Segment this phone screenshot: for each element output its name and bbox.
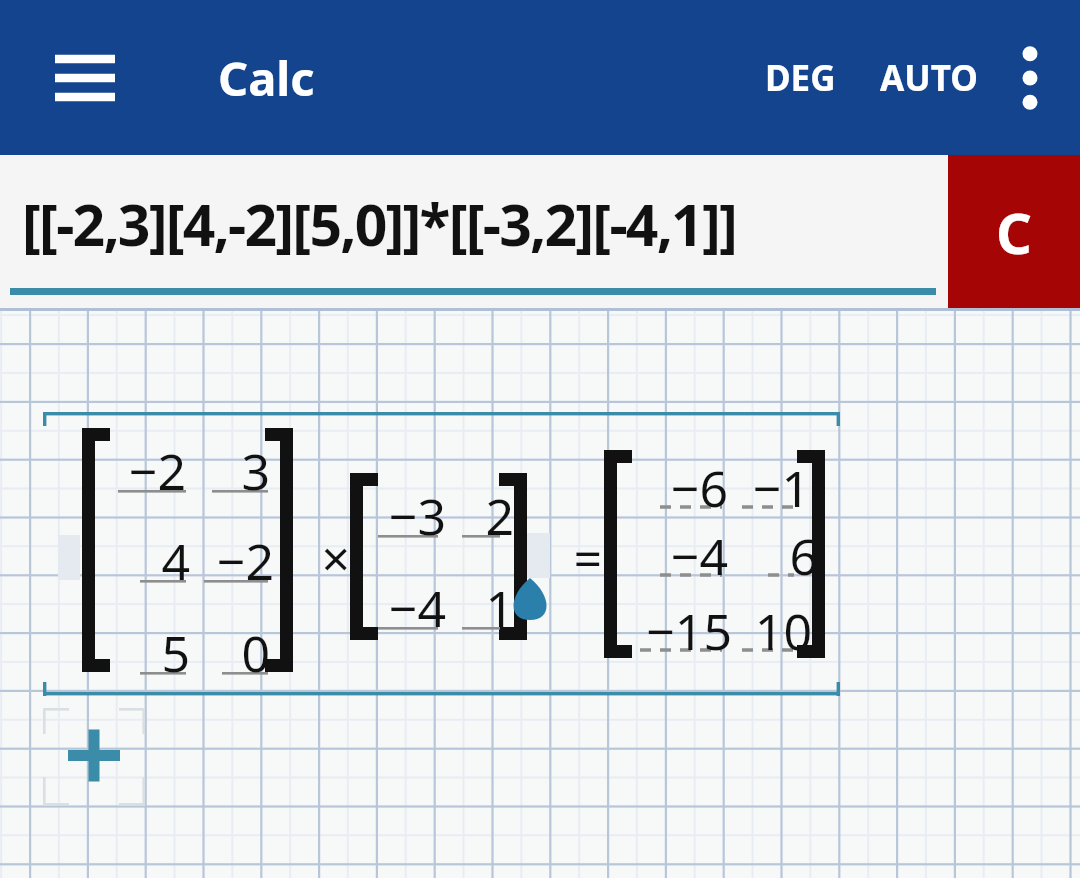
- staticText: 4: [161, 527, 190, 595]
- button[interactable]: Calc: [218, 30, 315, 126]
- button[interactable]: DEG: [751, 30, 850, 126]
- button[interactable]: [[-2,3][4,-2][5,0]]*[[-3,2][-4,1]]: [0, 155, 948, 308]
- button[interactable]: C: [948, 155, 1080, 308]
- button[interactable]: More options: [992, 30, 1068, 126]
- staticText: ×: [321, 524, 350, 592]
- button[interactable]: AUTO: [866, 30, 992, 126]
- staticText: 10: [754, 597, 812, 665]
- staticText: −2: [128, 437, 186, 505]
- staticText: −6: [670, 454, 728, 522]
- staticText: [[-2,3][4,-2][5,0]]*[[-3,2][-4,1]]: [22, 185, 737, 263]
- staticText: C: [996, 194, 1032, 270]
- staticText: −15: [646, 597, 732, 665]
- staticText: 3: [241, 437, 270, 505]
- staticText: DEG: [765, 54, 836, 102]
- staticText: 6: [789, 522, 818, 590]
- staticText: 5: [161, 619, 190, 687]
- staticText: 0: [241, 619, 270, 687]
- staticText: −4: [670, 522, 728, 590]
- staticText: −3: [388, 482, 446, 550]
- staticText: AUTO: [880, 54, 978, 102]
- staticText: −2: [216, 527, 274, 595]
- staticText: Calc: [218, 46, 315, 110]
- button[interactable]: −2: [0, 0, 1080, 878]
- staticText: −1: [752, 454, 810, 522]
- staticText: 1: [485, 574, 514, 642]
- staticText: −4: [388, 574, 446, 642]
- staticText: 2: [485, 482, 514, 550]
- button[interactable]: Open navigation menu: [36, 33, 134, 123]
- staticText: =: [573, 524, 602, 592]
